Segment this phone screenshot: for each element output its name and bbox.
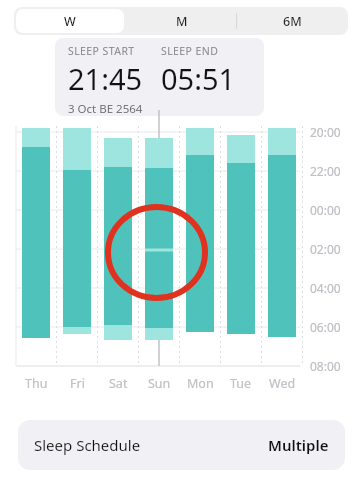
button[interactable]: SLEEP START bbox=[55, 38, 264, 116]
button[interactable]: Thu bbox=[16, 374, 56, 392]
staticText: Sun bbox=[148, 375, 171, 392]
button[interactable]: Wed bbox=[262, 374, 302, 392]
staticText: 08:00 bbox=[310, 358, 341, 374]
other: Weekly sleep chart bbox=[0, 0, 360, 485]
staticText: 21:45 bbox=[68, 59, 143, 98]
staticText: Fri bbox=[70, 375, 85, 392]
button[interactable]: Sun bbox=[139, 374, 179, 392]
staticText: Multiple bbox=[268, 435, 329, 455]
staticText: 00:00 bbox=[310, 202, 341, 218]
button[interactable]: Sat bbox=[98, 374, 138, 392]
button[interactable]: 6M bbox=[239, 9, 346, 33]
staticText: Wed bbox=[269, 375, 296, 392]
staticText: 20:00 bbox=[310, 124, 341, 140]
button[interactable]: Fri bbox=[57, 374, 97, 392]
button[interactable]: M bbox=[128, 9, 235, 33]
staticText: 05:51 bbox=[161, 59, 236, 98]
staticText: W bbox=[64, 13, 76, 30]
staticText: 22:00 bbox=[310, 163, 341, 179]
staticText: Mon bbox=[187, 375, 214, 392]
staticText: SLEEP START bbox=[68, 44, 135, 58]
staticText: M bbox=[176, 13, 188, 30]
button[interactable]: Tue bbox=[221, 374, 261, 392]
staticText: SLEEP END bbox=[161, 44, 219, 58]
button[interactable]: W bbox=[16, 9, 124, 33]
staticText: Sleep Schedule bbox=[34, 435, 141, 455]
staticText: 02:00 bbox=[310, 241, 341, 257]
button[interactable]: Mon bbox=[180, 374, 220, 392]
staticText: 3 Oct BE 2564 bbox=[68, 101, 143, 116]
staticText: Thu bbox=[25, 375, 48, 392]
staticText: Sat bbox=[109, 375, 128, 392]
staticText: 04:00 bbox=[310, 280, 341, 296]
button[interactable]: Sleep Schedule bbox=[18, 420, 345, 470]
staticText: 6M bbox=[283, 13, 302, 30]
staticText: Tue bbox=[230, 375, 252, 392]
staticText: 06:00 bbox=[310, 319, 341, 335]
